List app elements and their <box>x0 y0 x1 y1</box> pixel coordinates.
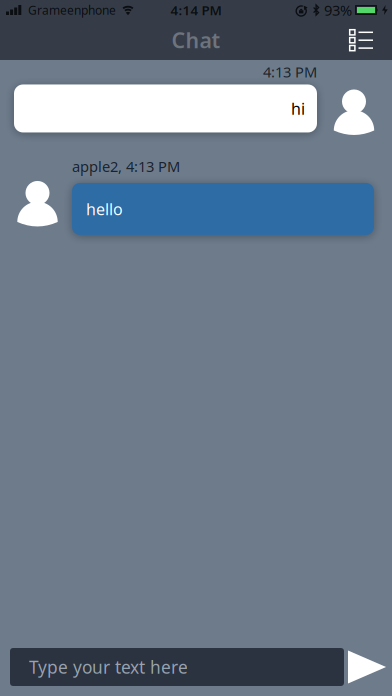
button[interactable]: Message from apple2: hello <box>72 183 374 235</box>
staticText: Chat <box>171 26 220 54</box>
staticText: 4:13 PM <box>263 62 317 81</box>
staticText: 4:14 PM <box>170 1 221 19</box>
button[interactable]: Type your text here <box>10 648 344 686</box>
button[interactable]: Message: hi <box>14 84 317 132</box>
button[interactable]: Chat options <box>349 29 392 51</box>
staticText: apple2, 4:13 PM <box>72 156 180 176</box>
button[interactable]: Send <box>348 650 386 683</box>
staticText: hello <box>86 198 123 219</box>
staticText: hi <box>291 98 305 119</box>
staticText: Type your text here <box>29 655 188 678</box>
staticText: 93% <box>324 0 352 20</box>
staticText: Grameenphone <box>28 2 116 18</box>
